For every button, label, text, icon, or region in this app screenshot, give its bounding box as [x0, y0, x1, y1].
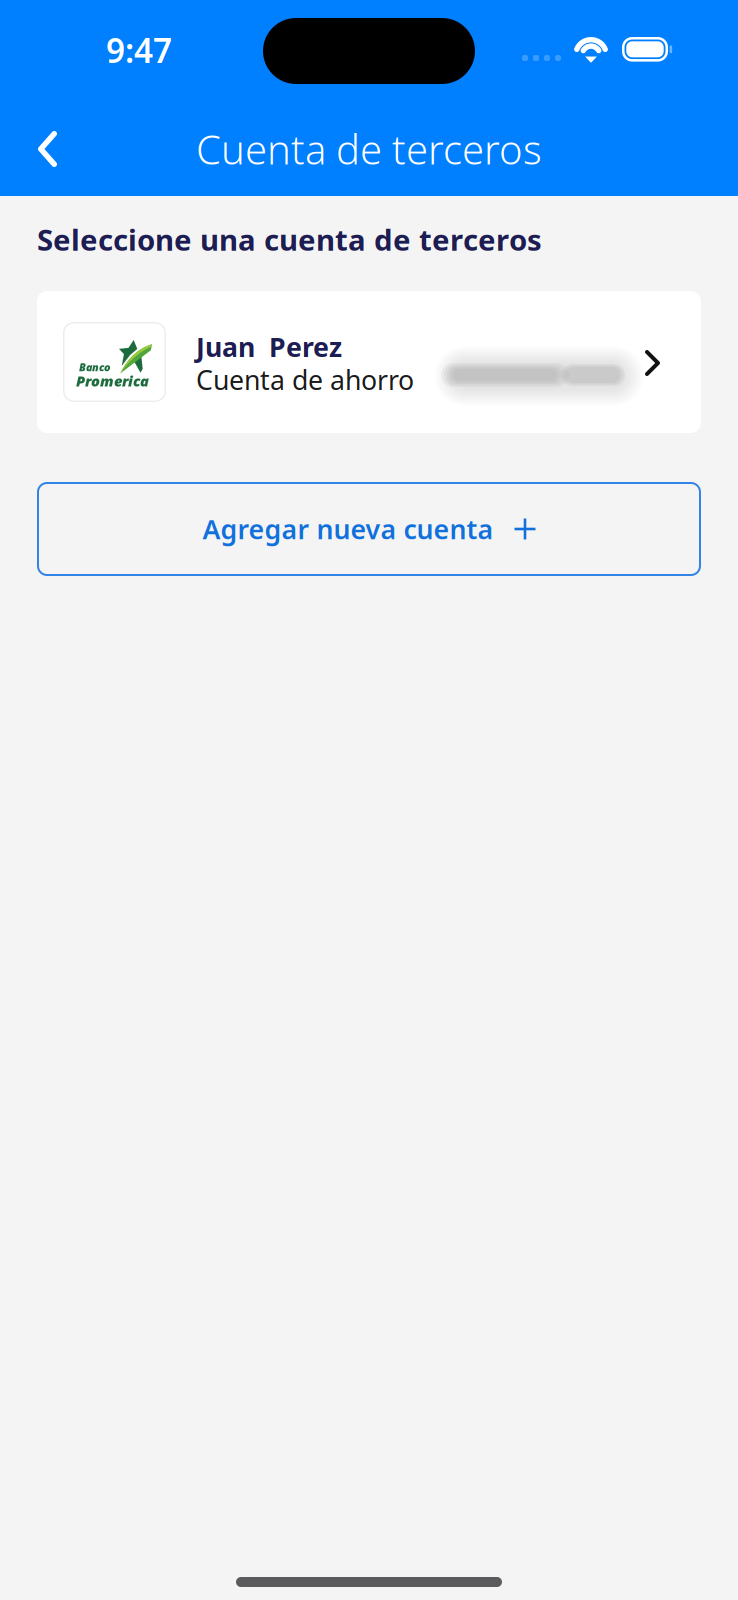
staticText: Agregar nueva cuenta — [202, 511, 493, 547]
staticText: Banco — [79, 360, 110, 374]
button[interactable]: Back — [0, 100, 84, 196]
staticText: Cuenta de ahorro — [196, 362, 414, 397]
button[interactable]: Banco — [37, 291, 701, 433]
staticText: Promerica — [76, 371, 149, 390]
staticText: Juan Perez — [196, 329, 342, 364]
staticText: 9:47 — [106, 28, 172, 72]
button[interactable]: Agregar nueva cuenta — [37, 482, 701, 576]
staticText: Cuenta de terceros — [196, 122, 542, 175]
staticText: Seleccione una cuenta de terceros — [37, 220, 542, 259]
